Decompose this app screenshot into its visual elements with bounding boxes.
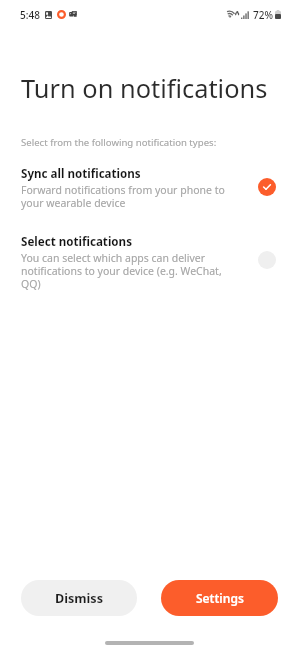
staticText: Settings: [196, 590, 244, 606]
button[interactable]: Not selected: [258, 251, 276, 269]
button[interactable]: [0, 226, 299, 294]
button[interactable]: Settings: [161, 580, 278, 616]
button[interactable]: Selected: [258, 178, 276, 196]
button[interactable]: Dismiss: [21, 580, 137, 616]
staticText: Sync all notifications: [21, 166, 141, 182]
button[interactable]: [0, 158, 299, 214]
staticText: Dismiss: [55, 590, 103, 607]
staticText: Select notifications: [21, 234, 132, 250]
staticText: Forward notifications from your phone to…: [21, 183, 231, 210]
staticText: Turn on notifications: [21, 71, 268, 106]
staticText: You can select which apps can deliver no…: [21, 251, 231, 291]
staticText: 72%: [253, 8, 273, 22]
staticText: 5:48: [20, 8, 40, 22]
staticText: Select from the following notification t…: [21, 136, 217, 149]
